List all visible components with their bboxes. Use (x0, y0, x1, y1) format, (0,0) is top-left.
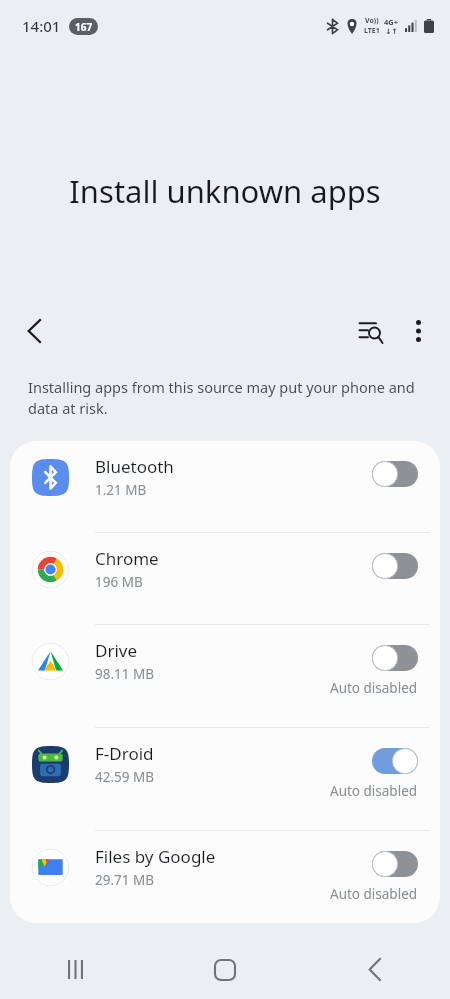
button[interactable]: Recent apps (0, 940, 150, 999)
staticText: Vo)) (365, 16, 379, 26)
staticText: 167 (75, 20, 93, 34)
button[interactable]: Home (150, 940, 300, 999)
staticText: Drive (95, 639, 138, 662)
button[interactable]: Disabled (372, 645, 418, 671)
staticText: 1.21 MB (95, 481, 147, 499)
button[interactable]: More options (394, 307, 442, 355)
button[interactable]: Search (346, 307, 394, 355)
button[interactable]: Enabled (372, 748, 418, 774)
staticText: Files by Google (95, 845, 216, 868)
button[interactable]: Back (300, 940, 450, 999)
button[interactable]: Disabled (372, 553, 418, 579)
staticText: LTE1 (364, 26, 380, 36)
button[interactable]: Disabled (372, 851, 418, 877)
button[interactable]: F-Droid (10, 728, 440, 830)
staticText: 14:01 (22, 16, 61, 36)
staticText: Install unknown apps (0, 170, 450, 212)
staticText: Auto disabled (330, 679, 418, 697)
staticText: 196 MB (95, 573, 143, 591)
button[interactable]: Chrome (10, 533, 440, 624)
staticText: 42.59 MB (95, 768, 155, 786)
button[interactable]: Drive (10, 625, 440, 727)
button[interactable]: Files by Google (10, 831, 440, 923)
button[interactable]: Disabled (372, 461, 418, 487)
staticText: Chrome (95, 547, 159, 570)
button[interactable]: Bluetooth (10, 441, 440, 532)
staticText: 29.71 MB (95, 871, 155, 889)
staticText: 98.11 MB (95, 665, 155, 683)
staticText: Bluetooth (95, 455, 174, 478)
staticText: Auto disabled (330, 885, 418, 903)
staticText: F-Droid (95, 742, 154, 765)
staticText: ↓↑ (385, 27, 398, 36)
staticText: Auto disabled (330, 782, 418, 800)
staticText: 4G+ (384, 17, 399, 27)
button[interactable]: Back (10, 307, 58, 355)
staticText: Installing apps from this source may put… (28, 377, 416, 419)
